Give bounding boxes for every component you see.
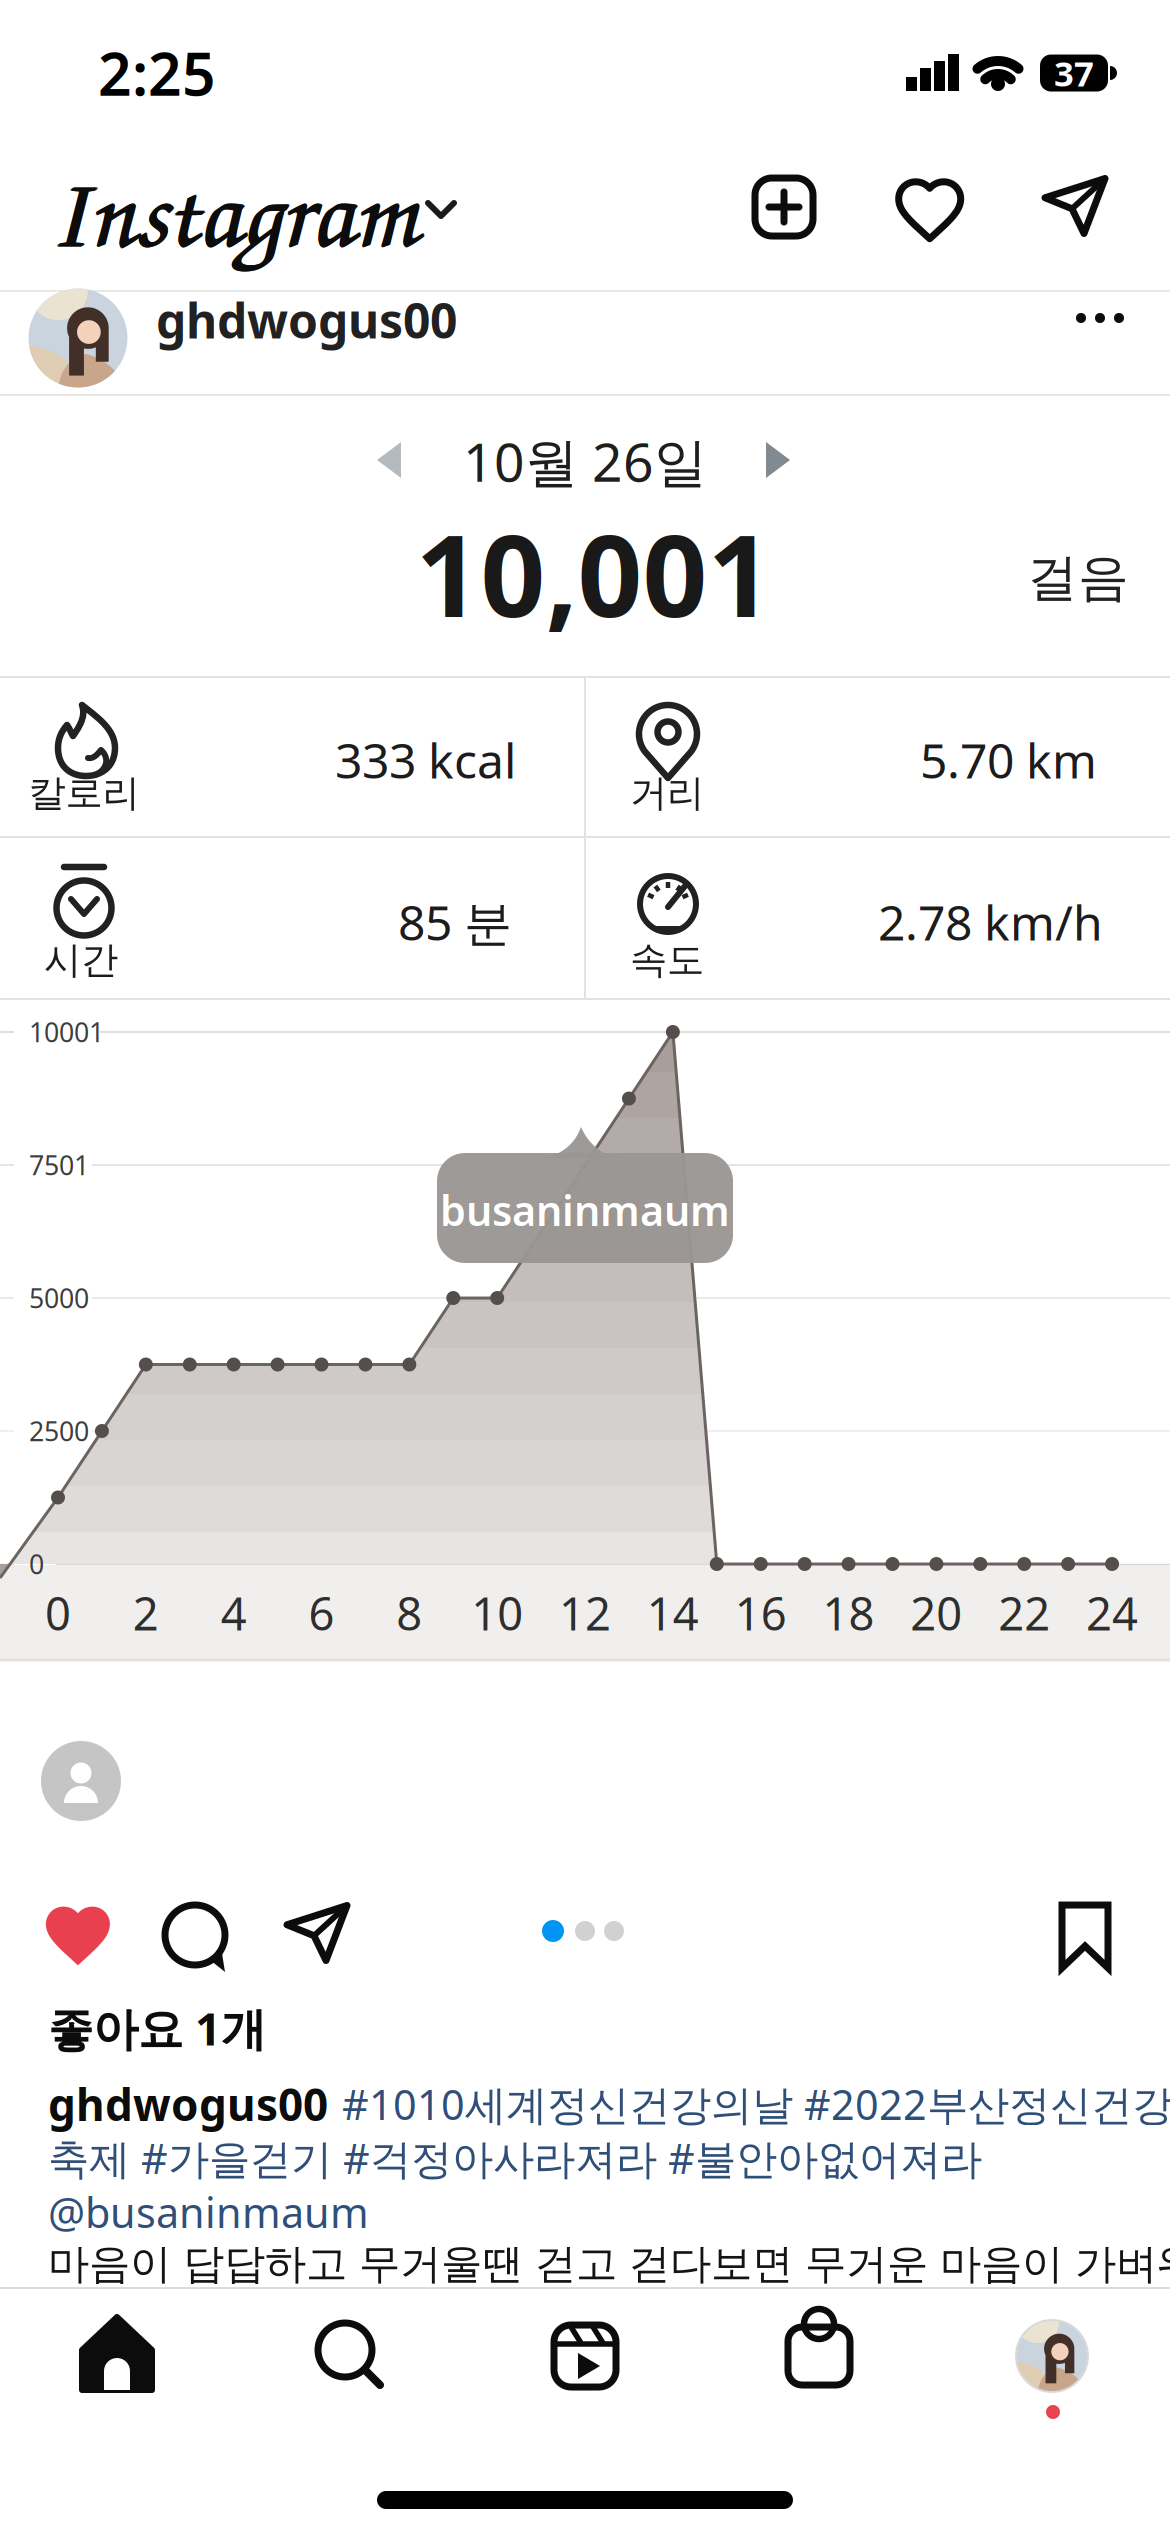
staticText: ghdwogus00 xyxy=(48,2075,328,2133)
staticText: 12 xyxy=(559,1583,611,1643)
button[interactable] xyxy=(28,288,127,387)
button[interactable] xyxy=(162,1901,232,1973)
button[interactable] xyxy=(377,442,401,478)
staticText: 7501 xyxy=(29,1147,89,1183)
staticText: 축제 #가을걷기 #걱정아사라져라 #불안아없어져라 xyxy=(48,2131,982,2185)
staticText: 10,001 xyxy=(415,498,772,648)
staticText: Instagram xyxy=(50,142,417,276)
button[interactable] xyxy=(41,1741,121,1821)
staticText: 10월 26일 xyxy=(463,426,707,496)
button[interactable] xyxy=(1014,2318,1090,2394)
staticText: 2.78 km/h xyxy=(878,890,1103,954)
button[interactable] xyxy=(316,2321,384,2389)
staticText: 0 xyxy=(45,1583,71,1643)
button[interactable]: Instagram xyxy=(42,148,422,268)
button[interactable]: ghdwogus00 xyxy=(156,288,656,352)
button[interactable] xyxy=(1039,176,1111,238)
staticText: 는 기분이 들다 가을에는 걷기 좋은 날씨라 더 좋았다 오늘도 xyxy=(48,2282,1152,2332)
button[interactable]: 좋아요 1개 xyxy=(48,1998,448,2058)
staticText: Instagram xyxy=(49,142,416,276)
staticText: 마음이 답답하고 무거울땐 걷고 걷다보면 무거운 마음이 가벼워지 xyxy=(48,2239,1170,2289)
staticText: 16 xyxy=(735,1583,787,1643)
staticText: 걸음 xyxy=(1027,547,1129,609)
staticText: 24 xyxy=(1086,1583,1138,1643)
staticText: 10 xyxy=(471,1583,523,1643)
staticText: busaninmaum xyxy=(440,1183,730,1237)
button[interactable] xyxy=(1058,1902,1112,1972)
staticText: 2:25 xyxy=(98,34,216,112)
button[interactable] xyxy=(891,174,968,244)
staticText: 칼로리 xyxy=(28,770,139,816)
button[interactable] xyxy=(39,1899,116,1969)
staticText: 좋아요 1개 xyxy=(48,1998,266,2058)
staticText: 2500 xyxy=(29,1413,89,1449)
button[interactable] xyxy=(752,175,816,239)
staticText: 20 xyxy=(910,1583,962,1643)
staticText: 4 xyxy=(221,1583,247,1643)
staticText: 거리 xyxy=(630,770,704,816)
staticText: 8 xyxy=(396,1583,422,1643)
button[interactable] xyxy=(766,442,790,478)
staticText: @busaninmaum xyxy=(48,2185,369,2239)
staticText: 2 xyxy=(133,1583,159,1643)
button[interactable] xyxy=(281,1903,353,1965)
staticText: 22 xyxy=(998,1583,1050,1643)
button[interactable] xyxy=(787,2300,851,2388)
staticText: 5.70 km xyxy=(920,728,1097,792)
staticText: 시간 xyxy=(44,937,118,983)
staticText: #1010세계정신건강의날 #2022부산정신건강 xyxy=(342,2077,1170,2131)
staticText: 10001 xyxy=(29,1014,104,1050)
button[interactable] xyxy=(552,2323,618,2389)
staticText: 6 xyxy=(308,1583,334,1643)
button[interactable] xyxy=(79,2316,155,2392)
staticText: 14 xyxy=(647,1583,699,1643)
staticText: 333 kcal xyxy=(335,728,516,792)
staticText: 5000 xyxy=(29,1280,89,1316)
staticText: Instagram xyxy=(48,141,415,275)
staticText: ghdwogus00 xyxy=(156,288,457,352)
staticText: 37 xyxy=(1054,50,1094,96)
staticText: Instagram xyxy=(50,141,417,275)
staticText: 0 xyxy=(29,1546,44,1582)
button[interactable] xyxy=(1065,298,1135,338)
staticText: 속도 xyxy=(630,937,704,983)
staticText: 85 분 xyxy=(398,890,512,954)
staticText: 18 xyxy=(822,1583,874,1643)
